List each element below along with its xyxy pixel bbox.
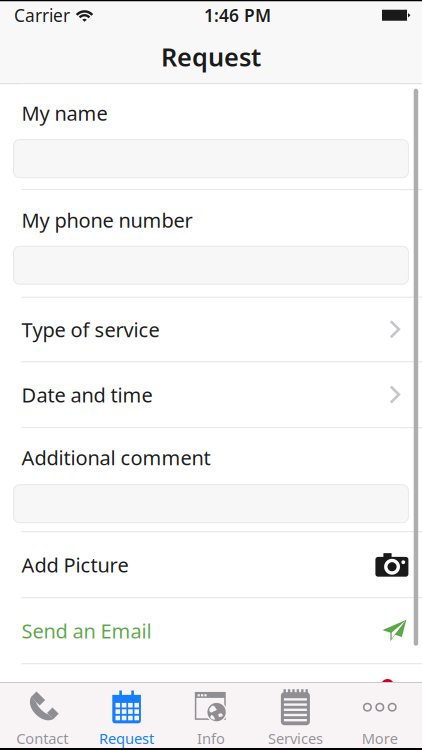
button[interactable]: Type of service xyxy=(21,298,400,361)
button[interactable]: Date and time xyxy=(21,362,400,427)
button[interactable]: Add Picture xyxy=(21,532,400,597)
staticText: Request xyxy=(99,728,154,748)
staticText: Request xyxy=(161,40,261,73)
staticText: Make a Call xyxy=(21,683,127,710)
staticText: Type of service xyxy=(21,316,159,343)
button[interactable]: Services xyxy=(253,682,338,748)
staticText: My name xyxy=(21,100,107,126)
button[interactable]: More xyxy=(338,682,422,748)
button[interactable]: Info xyxy=(169,682,253,748)
button[interactable]: Request xyxy=(84,682,169,748)
staticText: 1:46 PM xyxy=(204,4,271,27)
button[interactable]: Send an Email xyxy=(21,598,400,663)
staticText: Contact xyxy=(16,728,68,748)
staticText: Info xyxy=(197,728,225,748)
staticText: Date and time xyxy=(21,381,152,408)
staticText: Services xyxy=(268,728,323,748)
staticText: Carrier xyxy=(14,4,70,27)
staticText: More xyxy=(362,728,398,748)
staticText: Send an Email xyxy=(21,617,151,644)
staticText: My phone number xyxy=(21,207,192,233)
staticText: Additional comment xyxy=(21,444,210,471)
staticText: Add Picture xyxy=(21,551,128,578)
button[interactable]: Make a Call xyxy=(21,664,400,729)
button[interactable]: Contact xyxy=(0,682,84,748)
